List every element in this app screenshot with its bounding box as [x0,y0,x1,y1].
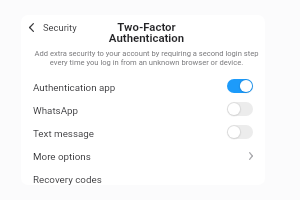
button[interactable]: Disabled [227,102,253,116]
button[interactable]: Enabled [227,79,253,93]
staticText: Recovery codes [33,174,102,185]
button[interactable]: Disabled [227,125,253,139]
button[interactable]: Authentication app [21,76,266,99]
staticText: Authentication app [33,82,116,93]
staticText: Add extra security to your account by re… [24,49,269,67]
staticText: Two-Factor Authentication [24,20,269,44]
button[interactable]: Recovery codes [21,168,266,191]
button[interactable]: More options [21,145,266,168]
button[interactable]: WhatsApp [21,99,266,122]
staticText: Security [43,22,77,33]
button[interactable]: Text message [21,122,266,145]
staticText: More options [33,151,91,162]
staticText: Text message [33,128,94,139]
staticText: WhatsApp [33,105,79,116]
button[interactable]: Back to Security [25,18,81,37]
